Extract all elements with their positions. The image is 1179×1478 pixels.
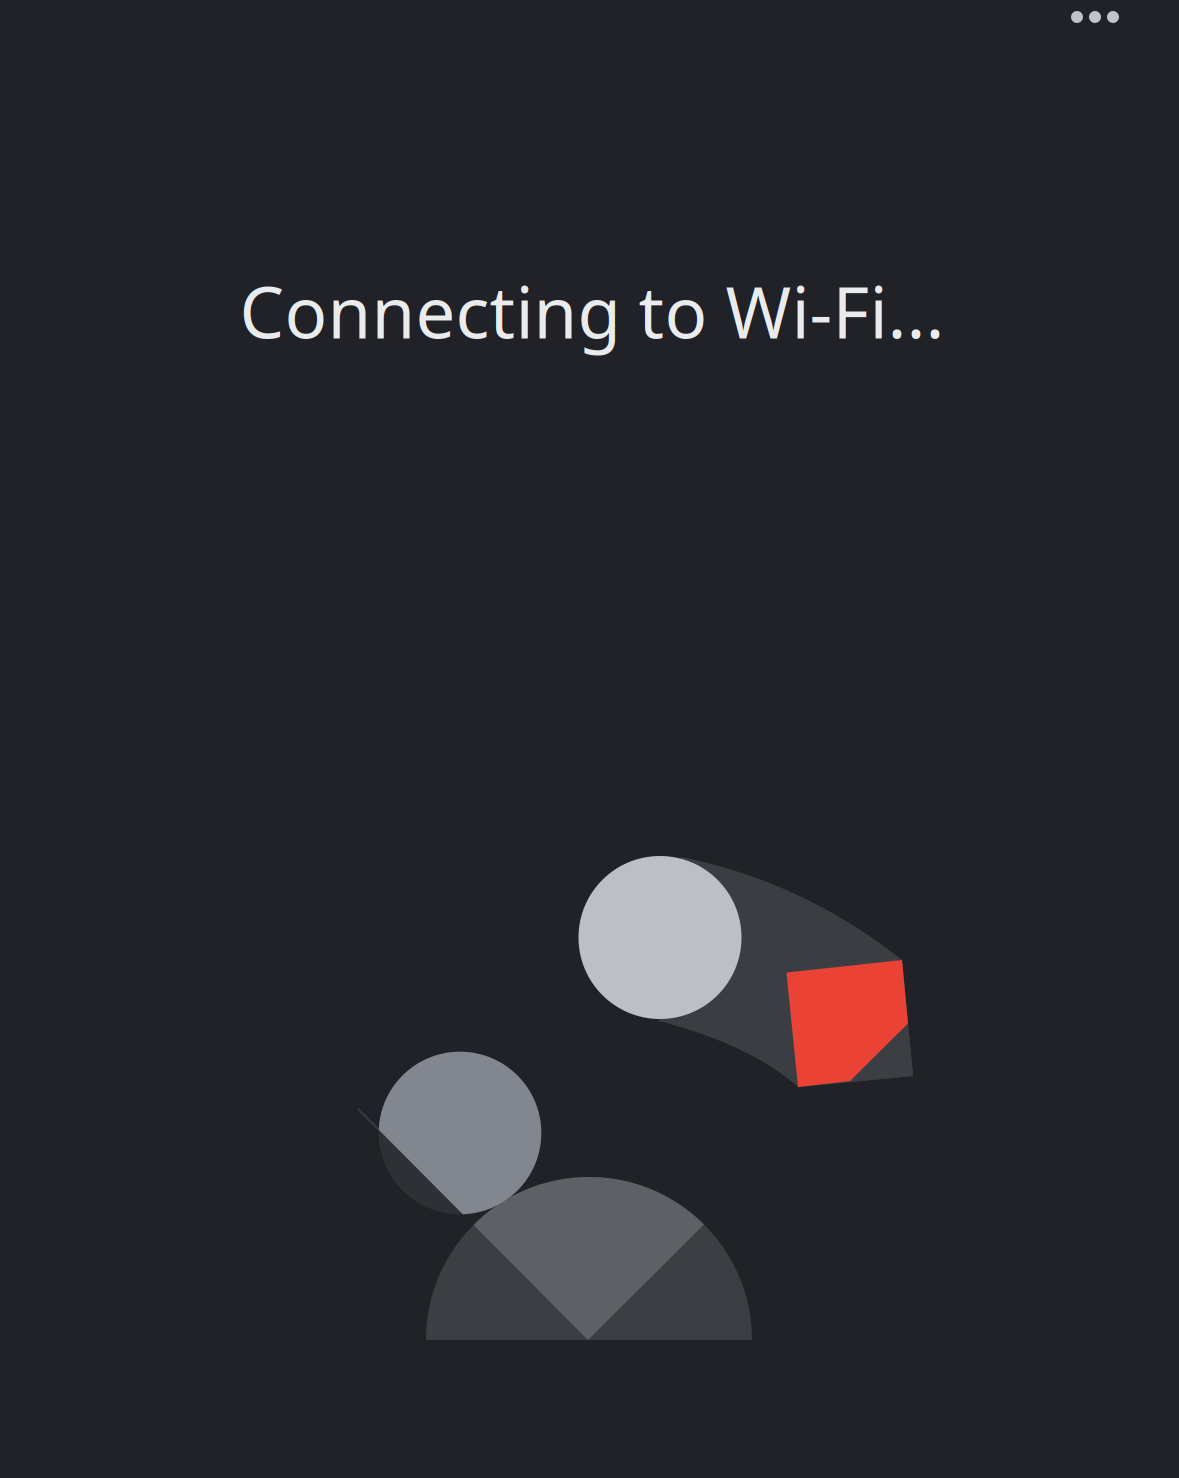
button[interactable]: More options [1047,0,1143,45]
staticText: Connecting to Wi-Fi... [239,264,944,358]
